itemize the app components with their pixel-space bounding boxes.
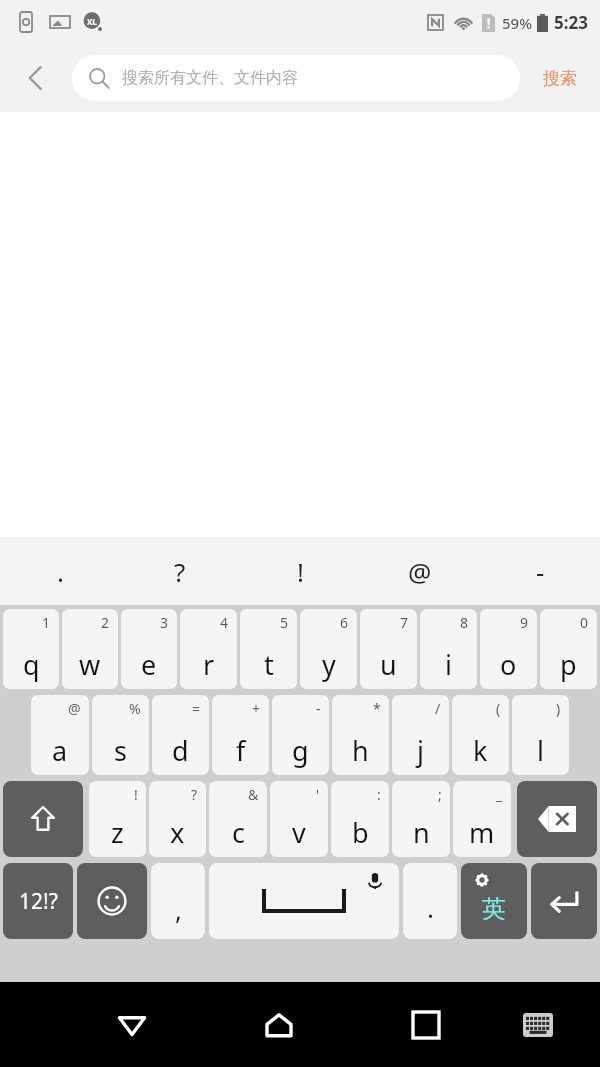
staticText: 12!? xyxy=(19,887,58,916)
button[interactable]: 2 xyxy=(62,609,118,689)
staticText: o xyxy=(500,646,517,683)
staticText: , xyxy=(175,892,182,927)
staticText: 1 xyxy=(42,613,51,632)
button[interactable]: ! xyxy=(240,537,360,605)
button[interactable]: . xyxy=(0,537,120,605)
button[interactable]: 9 xyxy=(480,609,537,689)
button[interactable]: ? xyxy=(120,537,240,605)
staticText: x xyxy=(170,814,185,851)
staticText: 8 xyxy=(460,613,469,632)
button[interactable]: . xyxy=(403,863,457,939)
staticText: ? xyxy=(191,785,198,804)
button[interactable]: @ xyxy=(360,537,480,605)
staticText: 6 xyxy=(340,613,349,632)
staticText: ! xyxy=(297,554,304,589)
staticText: 7 xyxy=(400,613,409,632)
staticText: f xyxy=(236,732,246,769)
staticText: ' xyxy=(316,785,320,804)
button[interactable]: 7 xyxy=(360,609,417,689)
button[interactable]: , xyxy=(151,863,205,939)
button[interactable]: ) xyxy=(512,695,569,775)
staticText: h xyxy=(352,732,369,769)
staticText: s xyxy=(114,732,127,769)
button[interactable]: Shift xyxy=(3,781,83,857)
button[interactable]: Recents xyxy=(398,997,454,1053)
staticText: l xyxy=(537,732,544,769)
staticText: 9 xyxy=(520,613,529,632)
button[interactable]: = xyxy=(152,695,209,775)
button[interactable]: ; xyxy=(392,781,450,857)
staticText: q xyxy=(23,646,40,683)
staticText: 5:23 xyxy=(554,11,588,34)
button[interactable]: Enter xyxy=(531,863,597,939)
staticText: 3 xyxy=(160,613,169,632)
staticText: 0 xyxy=(580,613,589,632)
button[interactable]: : xyxy=(331,781,389,857)
staticText: ? xyxy=(174,554,186,589)
button[interactable]: + xyxy=(212,695,269,775)
button[interactable]: & xyxy=(209,781,267,857)
button[interactable]: 3 xyxy=(121,609,177,689)
button[interactable]: 5 xyxy=(240,609,297,689)
staticText: + xyxy=(252,699,261,718)
button[interactable]: ( xyxy=(452,695,509,775)
button[interactable]: Space xyxy=(209,863,399,939)
button[interactable]: ? xyxy=(149,781,206,857)
button[interactable]: Emoji xyxy=(77,863,147,939)
button[interactable]: 搜索 xyxy=(520,44,600,112)
button[interactable]: Language xyxy=(461,863,527,939)
staticText: 搜索 xyxy=(543,68,577,89)
staticText: / xyxy=(435,699,441,718)
staticText: @ xyxy=(68,699,81,718)
button[interactable]: 1 xyxy=(3,609,59,689)
button[interactable]: _ xyxy=(453,781,511,857)
button[interactable]: 6 xyxy=(300,609,357,689)
staticText: ; xyxy=(438,785,442,804)
button[interactable]: 4 xyxy=(180,609,237,689)
staticText: _ xyxy=(496,785,503,804)
button[interactable]: 0 xyxy=(540,609,597,689)
staticText: - xyxy=(316,699,321,718)
staticText: a xyxy=(52,732,68,769)
staticText: i xyxy=(445,646,452,683)
staticText: z xyxy=(111,814,124,851)
staticText: c xyxy=(232,814,245,851)
button[interactable]: Symbols xyxy=(3,863,73,939)
button[interactable]: * xyxy=(332,695,389,775)
staticText: = xyxy=(192,699,201,718)
staticText: - xyxy=(536,554,545,589)
staticText: @ xyxy=(408,554,432,589)
staticText: * xyxy=(373,699,381,718)
button[interactable]: 搜索所有文件、文件内容 xyxy=(72,55,520,101)
staticText: XL xyxy=(87,16,97,27)
staticText: 搜索所有文件、文件内容 xyxy=(122,68,298,88)
staticText: p xyxy=(560,646,577,683)
button[interactable]: Backspace xyxy=(517,781,597,857)
staticText: n xyxy=(413,814,430,851)
button[interactable]: ' xyxy=(270,781,328,857)
button[interactable]: - xyxy=(480,537,600,605)
button[interactable]: Back xyxy=(0,44,72,112)
button[interactable]: Back xyxy=(104,997,160,1053)
staticText: ( xyxy=(496,699,501,718)
staticText: 2 xyxy=(101,613,110,632)
staticText: 5 xyxy=(280,613,289,632)
staticText: d xyxy=(172,732,189,769)
staticText: m xyxy=(469,814,495,851)
button[interactable]: Home xyxy=(251,997,307,1053)
button[interactable]: ! xyxy=(89,781,146,857)
button[interactable]: Hide keyboard xyxy=(510,997,566,1053)
button[interactable]: 8 xyxy=(420,609,477,689)
button[interactable]: - xyxy=(272,695,329,775)
staticText: k xyxy=(473,732,488,769)
staticText: v xyxy=(292,814,306,851)
staticText: . xyxy=(427,890,434,925)
staticText: 英 xyxy=(482,894,506,924)
button[interactable]: @ xyxy=(31,695,89,775)
staticText: w xyxy=(79,646,101,683)
staticText: j xyxy=(417,732,424,769)
staticText: b xyxy=(352,814,369,851)
button[interactable]: % xyxy=(92,695,149,775)
staticText: u xyxy=(380,646,397,683)
button[interactable]: / xyxy=(392,695,449,775)
